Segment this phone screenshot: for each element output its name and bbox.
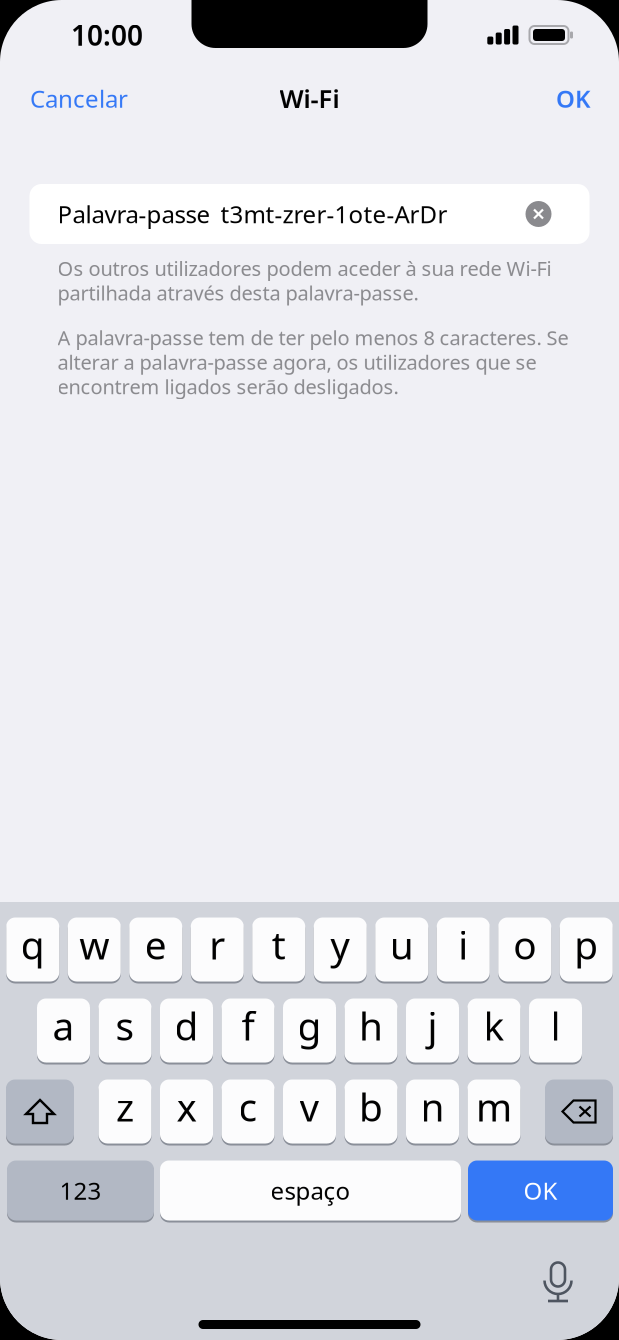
staticText: z (116, 1081, 134, 1132)
staticText: w (79, 919, 109, 970)
button[interactable]: OK (547, 74, 600, 123)
button[interactable]: j (406, 997, 459, 1063)
staticText: 10:00 (71, 16, 143, 54)
staticText: y (330, 919, 350, 970)
staticText: l (550, 1000, 560, 1051)
staticText: f (241, 1000, 254, 1051)
button[interactable]: u (375, 916, 428, 982)
staticText: Cancelar (30, 83, 128, 114)
button[interactable]: OK (468, 1159, 613, 1221)
staticText: h (359, 1000, 383, 1051)
button[interactable]: Dictation (544, 1261, 572, 1303)
button[interactable]: Cancelar (21, 74, 137, 123)
staticText: i (458, 919, 468, 970)
button[interactable]: r (191, 916, 244, 982)
button[interactable]: a (37, 997, 90, 1063)
staticText: 123 (59, 1175, 101, 1206)
staticText: a (52, 1000, 74, 1051)
staticText: n (420, 1081, 444, 1132)
staticText: Palavra-passe (57, 198, 210, 230)
staticText: b (359, 1081, 383, 1132)
button[interactable]: l (529, 997, 582, 1063)
staticText: x (176, 1081, 196, 1132)
staticText: j (427, 1000, 437, 1051)
staticText: q (21, 919, 45, 970)
button[interactable]: Clear text (525, 201, 551, 227)
button[interactable]: t (252, 916, 305, 982)
staticText: A palavra-passe tem de ter pelo menos 8 … (57, 324, 568, 400)
staticText: Wi-Fi (279, 82, 339, 115)
button[interactable]: k (467, 997, 520, 1063)
button[interactable]: Delete (545, 1078, 613, 1144)
staticText: t (272, 919, 286, 970)
button[interactable]: espaço (160, 1159, 461, 1221)
button[interactable]: z (98, 1078, 151, 1144)
button[interactable]: f (221, 997, 274, 1063)
staticText: p (574, 919, 598, 970)
button[interactable]: w (68, 916, 121, 982)
staticText: OK (556, 83, 591, 114)
button[interactable]: p (560, 916, 613, 982)
staticText: o (513, 919, 536, 970)
button[interactable]: h (344, 997, 397, 1063)
staticText: v (299, 1081, 319, 1132)
button[interactable]: s (98, 997, 151, 1063)
button[interactable]: i (437, 916, 490, 982)
staticText: s (115, 1000, 134, 1051)
button[interactable]: c (221, 1078, 274, 1144)
staticText: espaço (270, 1175, 350, 1206)
staticText: r (209, 919, 225, 970)
staticText: u (390, 919, 414, 970)
button[interactable]: q (6, 916, 59, 982)
button[interactable]: Shift (6, 1078, 74, 1144)
staticText: d (174, 1000, 198, 1051)
staticText: k (483, 1000, 504, 1051)
button[interactable]: v (283, 1078, 336, 1144)
staticText: g (297, 1000, 321, 1051)
staticText: Os outros utilizadores podem aceder à su… (57, 255, 551, 306)
button[interactable]: y (314, 916, 367, 982)
staticText: m (476, 1081, 512, 1132)
staticText: t3mt-zrer-1ote-ArDr (220, 198, 447, 230)
button[interactable]: e (129, 916, 182, 982)
button[interactable]: g (283, 997, 336, 1063)
staticText: OK (523, 1175, 557, 1206)
staticText: c (238, 1081, 257, 1132)
button[interactable]: o (498, 916, 551, 982)
button[interactable]: n (406, 1078, 459, 1144)
staticText: e (145, 919, 167, 970)
button[interactable]: x (160, 1078, 213, 1144)
button[interactable]: m (467, 1078, 520, 1144)
button[interactable]: d (160, 997, 213, 1063)
button[interactable]: b (344, 1078, 397, 1144)
button[interactable]: 123 (7, 1159, 154, 1221)
